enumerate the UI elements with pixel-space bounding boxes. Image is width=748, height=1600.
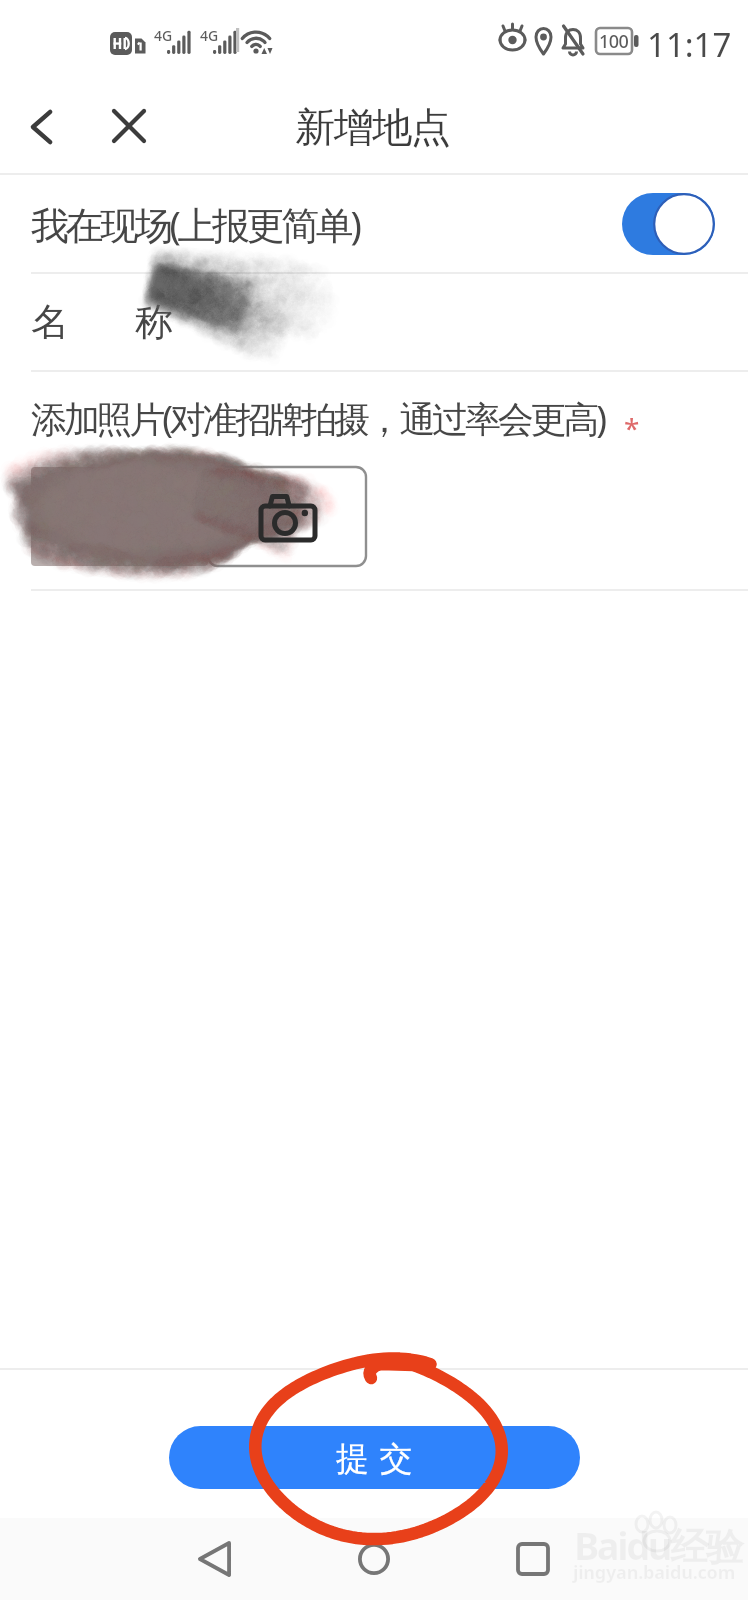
button[interactable]: I am on site toggle <box>622 193 715 255</box>
staticText: 100 <box>599 29 629 54</box>
staticText: Baidu经验 <box>574 1519 742 1571</box>
staticText: 11:17 <box>647 22 732 67</box>
button[interactable]: 名 <box>0 274 748 370</box>
staticText: jingyan.baidu.com <box>573 1560 736 1585</box>
button[interactable]: 提 交 <box>169 1426 580 1489</box>
button[interactable]: Home <box>339 1539 409 1579</box>
staticText: 添加照片(对准招牌拍摄，通过率会更高) <box>31 394 604 443</box>
button[interactable]: Close <box>101 98 157 154</box>
staticText: 称 <box>135 298 173 346</box>
button[interactable]: 我在现场(上报更简单) <box>0 175 748 272</box>
staticText: 4G <box>154 26 173 45</box>
button[interactable]: Photo <box>31 467 208 566</box>
staticText: 我在现场(上报更简单) <box>31 198 359 250</box>
button[interactable]: Back <box>179 1539 249 1579</box>
staticText: 名 <box>31 298 69 346</box>
button[interactable]: Recents <box>498 1539 568 1579</box>
staticText: 提 交 <box>336 1435 414 1480</box>
staticText: * <box>624 409 640 447</box>
button[interactable]: Add photo <box>208 467 366 566</box>
staticText: 新增地点 <box>296 102 450 152</box>
staticText: 4G <box>200 26 219 45</box>
button[interactable]: Back <box>14 98 72 156</box>
